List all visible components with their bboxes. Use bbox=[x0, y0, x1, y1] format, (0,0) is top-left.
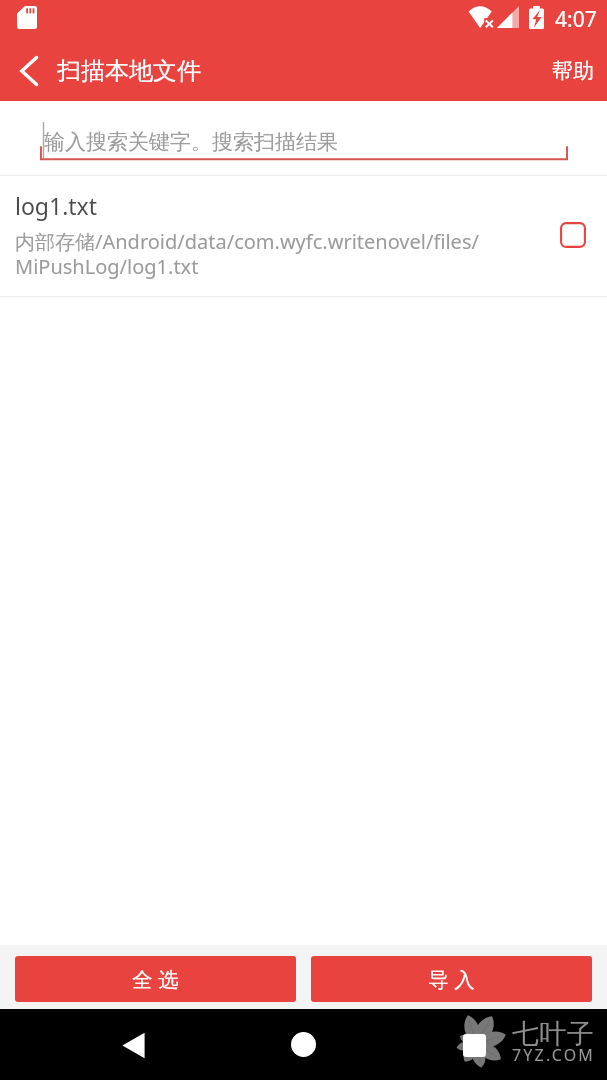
button[interactable]: Back bbox=[0, 40, 58, 101]
staticText: 内部存储/Android/data/com.wyfc.writenovel/fi… bbox=[15, 228, 479, 280]
button[interactable]: Recent apps bbox=[451, 1022, 497, 1068]
staticText: 全 选 bbox=[132, 965, 179, 993]
button[interactable]: 导 入 bbox=[311, 956, 592, 1002]
button[interactable]: Select file bbox=[551, 213, 594, 256]
button[interactable]: 帮助 bbox=[536, 42, 607, 100]
staticText: 导 入 bbox=[428, 965, 475, 993]
button[interactable]: 全 选 bbox=[15, 956, 296, 1002]
button[interactable]: 输入搜索关键字。搜索扫描结果 bbox=[0, 101, 607, 175]
button[interactable]: log1.txt bbox=[0, 176, 607, 296]
staticText: 4:07 bbox=[555, 5, 597, 34]
staticText: 扫描本地文件 bbox=[57, 56, 201, 86]
staticText: 输入搜索关键字。搜索扫描结果 bbox=[44, 129, 338, 155]
staticText: 7YZ.COM bbox=[512, 1044, 596, 1066]
staticText: 帮助 bbox=[552, 58, 594, 84]
staticText: log1.txt bbox=[15, 190, 98, 221]
button[interactable]: Home bbox=[281, 1022, 326, 1067]
staticText: 七叶子 bbox=[512, 1017, 595, 1051]
button[interactable]: Back bbox=[110, 1022, 156, 1068]
